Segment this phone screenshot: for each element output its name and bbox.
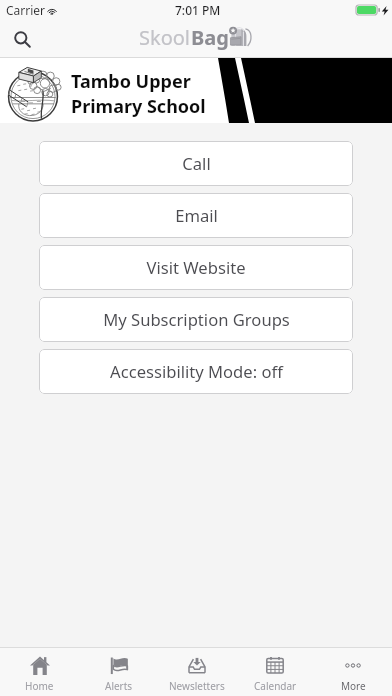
staticText: Primary School: [71, 94, 206, 119]
staticText: Bag: [191, 24, 229, 51]
button[interactable]: Call: [39, 141, 353, 186]
staticText: Home: [25, 679, 54, 693]
button[interactable]: Search: [0, 20, 44, 58]
button[interactable]: My Subscription Groups: [39, 297, 353, 342]
staticText: Call: [182, 152, 211, 175]
button[interactable]: Calendar: [236, 648, 314, 696]
staticText: Newsletters: [169, 679, 225, 693]
staticText: Accessibility Mode: off: [110, 360, 283, 383]
staticText: Calendar: [254, 679, 297, 693]
staticText: More: [341, 679, 366, 693]
staticText: Skool: [139, 24, 191, 51]
button[interactable]: Newsletters: [158, 648, 236, 696]
button[interactable]: More: [314, 648, 392, 696]
button[interactable]: Alerts: [79, 648, 158, 696]
staticText: Email: [175, 204, 218, 227]
button[interactable]: Email: [39, 193, 353, 238]
staticText: Alerts: [105, 679, 133, 693]
staticText: 7:01 PM: [175, 2, 221, 18]
staticText: My Subscription Groups: [103, 308, 290, 331]
button[interactable]: Visit Website: [39, 245, 353, 290]
button[interactable]: Home: [0, 648, 79, 696]
staticText: Visit Website: [146, 256, 246, 279]
button[interactable]: Accessibility Mode: off: [39, 349, 353, 394]
staticText: Carrier: [6, 2, 46, 18]
staticText: Tambo Upper: [71, 69, 191, 94]
